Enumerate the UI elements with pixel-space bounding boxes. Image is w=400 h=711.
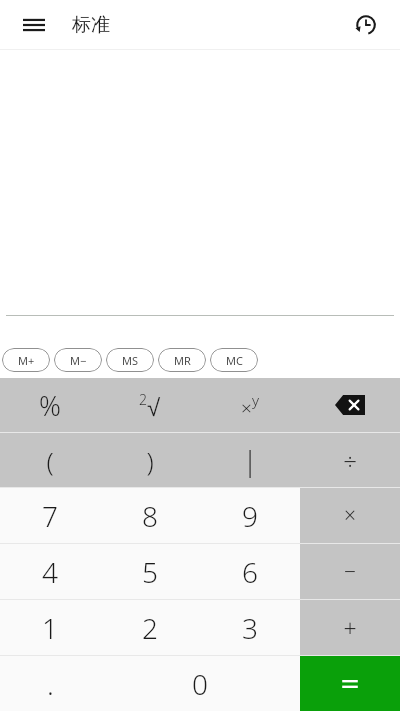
staticText: 3 bbox=[242, 609, 258, 647]
button[interactable]: M+ bbox=[2, 348, 50, 372]
button[interactable]: ÷ bbox=[300, 433, 400, 487]
button[interactable]: 1 bbox=[0, 600, 100, 655]
staticText: √ bbox=[147, 394, 161, 421]
button[interactable]: − bbox=[300, 544, 400, 599]
button[interactable]: % bbox=[0, 378, 100, 432]
button[interactable]: Square root bbox=[100, 378, 200, 432]
button[interactable]: ( bbox=[0, 433, 100, 487]
button[interactable]: MS bbox=[106, 348, 154, 372]
staticText: 2 bbox=[142, 609, 158, 647]
staticText: M− bbox=[70, 353, 87, 368]
button[interactable]: × bbox=[300, 488, 400, 543]
staticText: ( bbox=[46, 443, 54, 478]
button[interactable]: M− bbox=[54, 348, 102, 372]
staticText: ) bbox=[146, 443, 154, 478]
staticText: × bbox=[344, 501, 356, 530]
button[interactable]: 5 bbox=[100, 544, 200, 599]
staticText: | bbox=[242, 441, 258, 479]
button[interactable]: History bbox=[344, 3, 388, 47]
staticText: 0 bbox=[192, 665, 208, 703]
button[interactable]: 6 bbox=[200, 544, 300, 599]
staticText: 2 bbox=[139, 390, 147, 409]
staticText: . bbox=[47, 665, 54, 703]
staticText: 4 bbox=[42, 553, 58, 591]
button[interactable]: + bbox=[300, 600, 400, 655]
staticText: 5 bbox=[142, 553, 158, 591]
staticText: 9 bbox=[242, 497, 258, 535]
button[interactable]: Backspace bbox=[300, 378, 400, 432]
staticText: 标准 bbox=[72, 13, 110, 37]
staticText: ÷ bbox=[343, 444, 357, 477]
button[interactable]: 8 bbox=[100, 488, 200, 543]
staticText: MC bbox=[226, 353, 243, 368]
button[interactable]: MC bbox=[210, 348, 258, 372]
staticText: 6 bbox=[242, 553, 258, 591]
button[interactable]: | bbox=[200, 433, 300, 487]
button[interactable]: ) bbox=[100, 433, 200, 487]
staticText: M+ bbox=[18, 353, 35, 368]
button[interactable]: 7 bbox=[0, 488, 100, 543]
button[interactable]: MR bbox=[158, 348, 206, 372]
staticText: 8 bbox=[142, 497, 158, 535]
button[interactable]: 4 bbox=[0, 544, 100, 599]
button[interactable]: . bbox=[0, 656, 100, 711]
button[interactable]: Power bbox=[200, 378, 300, 432]
button[interactable]: Menu bbox=[12, 3, 56, 47]
staticText: × bbox=[241, 395, 252, 421]
button[interactable]: 3 bbox=[200, 600, 300, 655]
button[interactable]: 0 bbox=[100, 656, 300, 711]
button[interactable]: 2 bbox=[100, 600, 200, 655]
staticText: 7 bbox=[42, 497, 58, 535]
staticText: % bbox=[39, 387, 61, 424]
staticText: + bbox=[343, 612, 357, 643]
staticText: 1 bbox=[42, 609, 58, 647]
staticText: MS bbox=[122, 353, 139, 368]
button[interactable]: Equals bbox=[300, 656, 400, 711]
button[interactable]: 9 bbox=[200, 488, 300, 543]
staticText: MR bbox=[174, 353, 191, 368]
staticText: y bbox=[252, 390, 260, 410]
staticText: − bbox=[344, 557, 356, 586]
